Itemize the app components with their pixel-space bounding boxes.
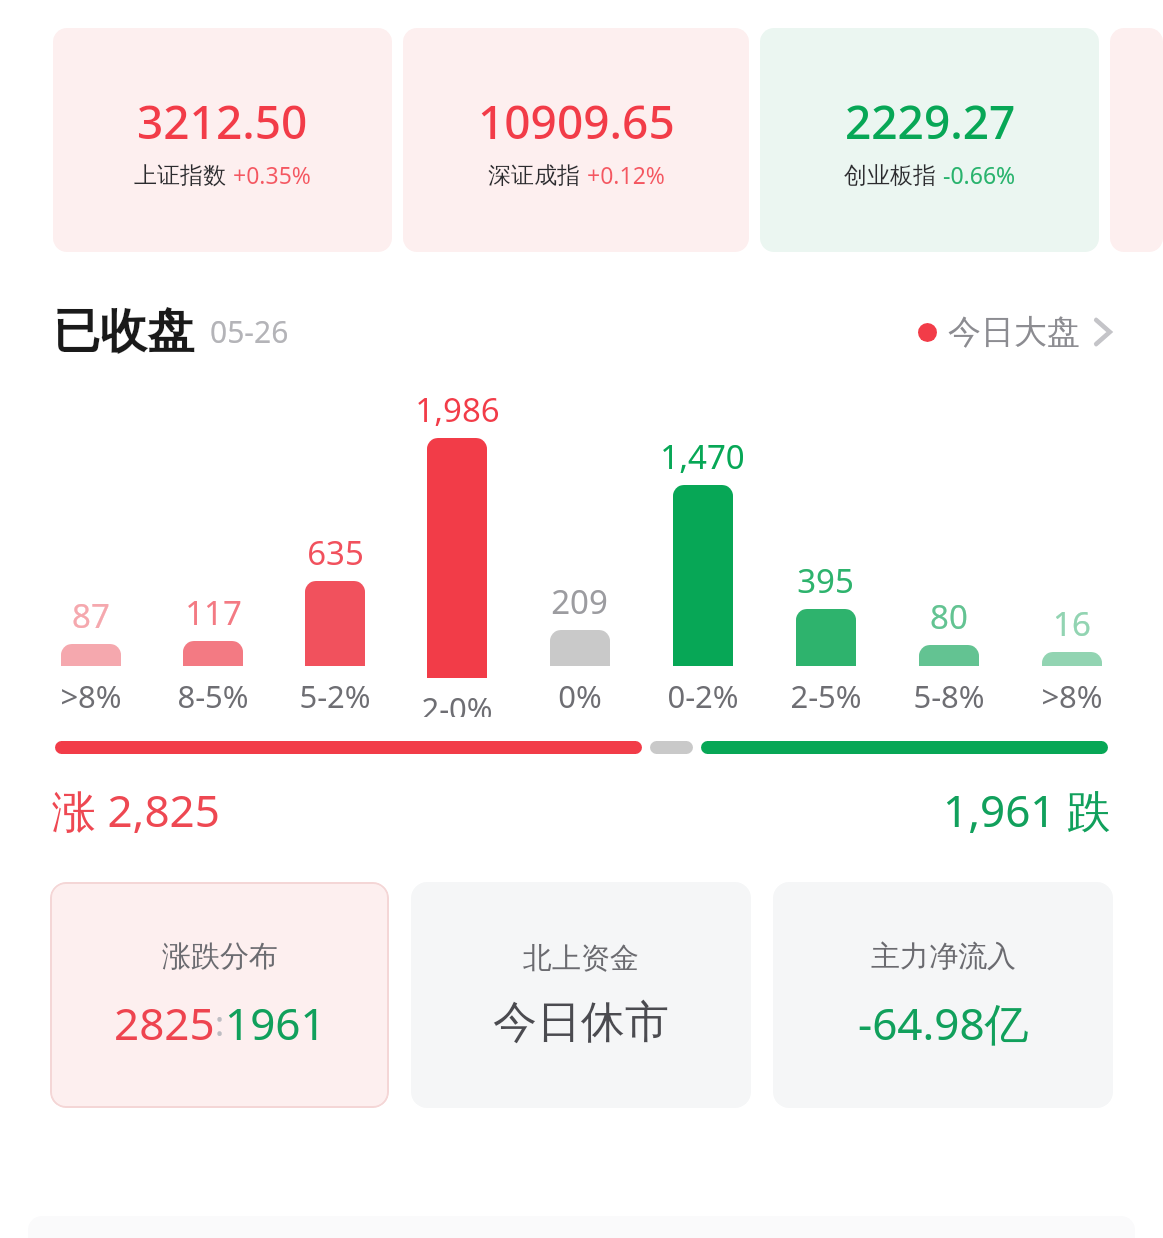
staticText: 16 — [1053, 601, 1091, 646]
staticText: 2-5% — [790, 675, 862, 717]
staticText: 635 — [307, 530, 364, 575]
staticText: 今日休市 — [493, 995, 669, 1050]
staticText: +0.35% — [233, 159, 311, 190]
staticText: 05-26 — [210, 311, 289, 352]
staticText: 2-0% — [421, 687, 493, 717]
staticText: >8% — [1041, 675, 1103, 717]
staticText: 87 — [72, 593, 110, 638]
staticText: 117 — [185, 590, 242, 635]
staticText: 80 — [930, 594, 968, 639]
staticText: 1,986 — [415, 387, 500, 432]
staticText: 涨 2,825 — [52, 780, 220, 840]
staticText: +0.12% — [587, 159, 665, 190]
staticText: 1961 — [225, 993, 326, 1053]
staticText: 深证成指 — [488, 161, 580, 190]
staticText: 已收盘 — [53, 302, 194, 361]
staticText: 0-2% — [667, 675, 739, 717]
staticText: -0.66% — [943, 159, 1016, 190]
staticText: -64.98亿 — [858, 993, 1029, 1053]
staticText: 2229.27 — [845, 90, 1016, 153]
staticText: 上证指数 — [134, 161, 226, 190]
button[interactable]: 主力净流入 — [773, 882, 1113, 1108]
staticText: 5-2% — [299, 675, 371, 717]
staticText: 8-5% — [177, 675, 249, 717]
staticText: 1,961 跌 — [943, 780, 1111, 840]
staticText: 5-8% — [913, 675, 985, 717]
staticText: 2825 — [114, 993, 215, 1053]
staticText: >8% — [60, 675, 122, 717]
staticText: 创业板指 — [844, 161, 936, 190]
staticText: 3212.50 — [137, 90, 308, 153]
staticText: 涨跌分布 — [162, 938, 278, 975]
staticText: 10909.65 — [478, 90, 675, 153]
button[interactable]: 涨跌分布 — [50, 882, 389, 1108]
staticText: 北上资金 — [523, 940, 639, 977]
staticText: 395 — [797, 558, 854, 603]
staticText: 209 — [551, 579, 608, 624]
staticText: : — [215, 1000, 225, 1046]
button[interactable]: 2229.27 — [760, 28, 1099, 252]
button[interactable]: 今日大盘 — [912, 305, 1118, 359]
staticText: 主力净流入 — [871, 938, 1016, 975]
button[interactable]: 10909.65 — [403, 28, 749, 252]
button[interactable]: 3212.50 — [53, 28, 392, 252]
staticText: 1,470 — [660, 434, 745, 479]
staticText: 今日大盘 — [948, 311, 1080, 353]
button[interactable]: 北上资金 — [411, 882, 751, 1108]
staticText: 0% — [558, 675, 602, 717]
